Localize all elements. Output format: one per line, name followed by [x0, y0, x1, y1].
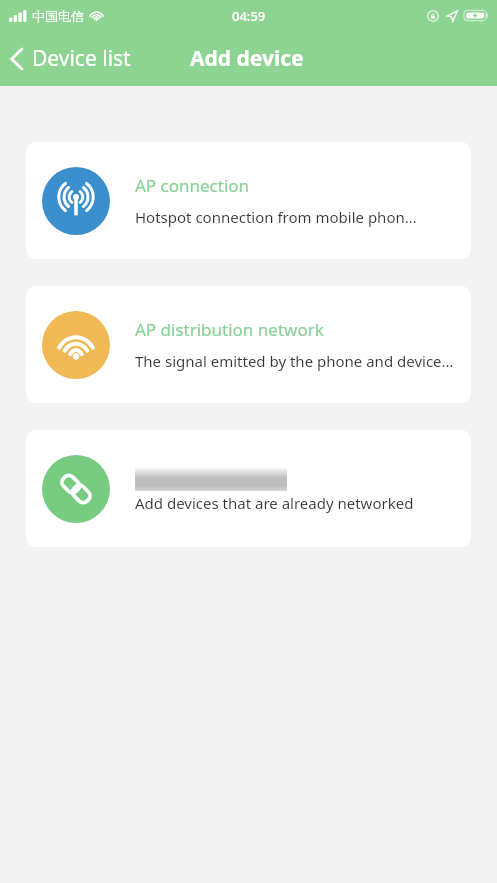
button[interactable]: Add networked device: [26, 430, 471, 547]
button[interactable]: AP connection: [26, 142, 471, 259]
staticText: Device list: [32, 44, 131, 73]
staticText: 中国电信: [32, 8, 84, 24]
button[interactable]: Device list: [0, 38, 143, 79]
other: Add networked device: [57, 470, 95, 508]
staticText: The signal emitted by the phone and devi…: [135, 351, 455, 371]
button[interactable]: AP distribution network: [26, 286, 471, 403]
staticText: Hotspot connection from mobile phon…: [135, 207, 417, 227]
staticText: 04:59: [232, 7, 266, 25]
staticText: AP connection: [135, 174, 250, 197]
staticText: Add device: [190, 44, 304, 73]
other: AP distribution network: [57, 326, 95, 364]
other: AP connection: [56, 181, 96, 221]
staticText: Add devices that are already networked: [135, 493, 414, 513]
staticText: AP distribution network: [135, 318, 324, 341]
